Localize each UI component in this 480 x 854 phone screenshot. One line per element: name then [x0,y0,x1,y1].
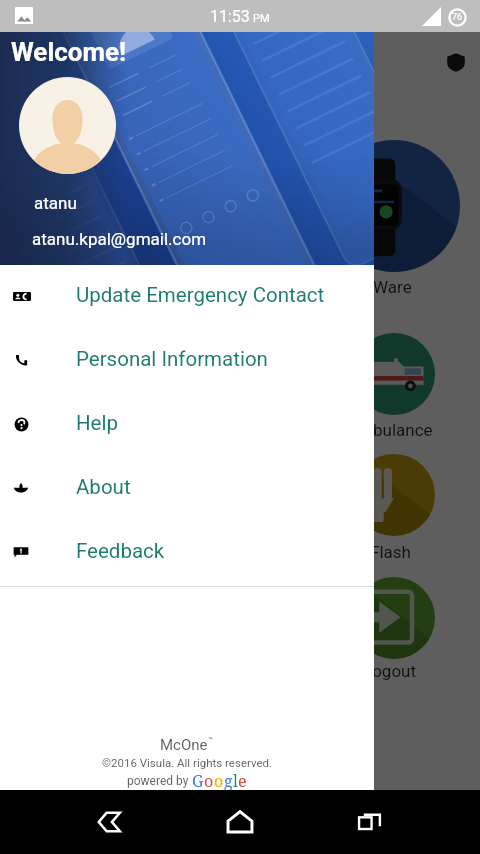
staticText: Ambulance [347,420,433,440]
button[interactable]: Security [446,52,466,72]
button[interactable]: Recents [346,798,394,846]
staticText: o [204,770,214,792]
staticText: ©2016 Visula. All rights reserved. [102,756,273,769]
staticText: Flash [370,542,411,562]
staticText: ™ [208,736,214,745]
staticText: McOne [160,736,208,754]
staticText: o [214,770,224,792]
staticText: g [224,770,233,792]
staticText: atanu [34,193,77,213]
button[interactable] [353,454,435,536]
button[interactable]: Help [0,392,374,456]
staticText: atanu.kpal@gmail.com [32,229,207,249]
button[interactable]: Feedback [0,520,374,584]
staticText: Feedback [76,539,165,563]
staticText: l [233,770,238,792]
staticText: About [76,475,131,499]
button[interactable]: Update Emergency Contact [0,264,374,328]
button[interactable]: Back [86,798,134,846]
button[interactable] [328,140,460,272]
button[interactable] [353,577,435,659]
staticText: PM [253,12,270,25]
staticText: Help [76,411,118,435]
staticText: Personal Information [76,347,268,371]
button[interactable]: Personal Information [0,328,374,392]
staticText: G [192,770,204,792]
button[interactable]: About [0,456,374,520]
button[interactable] [353,333,435,415]
button[interactable]: Home [216,798,264,846]
staticText: 76 [452,12,463,23]
staticText: Update Emergency Contact [76,283,325,307]
staticText: powered by [127,774,192,788]
staticText: Welcome! [11,37,127,67]
staticText: Wear Ware [330,277,412,297]
staticText: 11:53 [210,7,250,26]
staticText: Logout [363,661,417,681]
staticText: e [238,770,247,792]
